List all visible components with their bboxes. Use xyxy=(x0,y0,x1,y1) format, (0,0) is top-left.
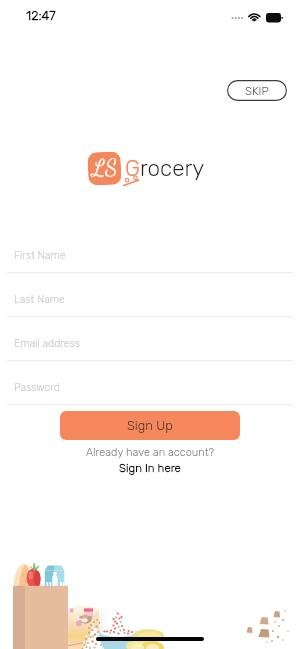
button[interactable]: Sign Up xyxy=(60,411,240,440)
button[interactable]: Sign In here xyxy=(113,460,187,476)
staticText: Already have an account? xyxy=(0,446,300,459)
staticText: 12:47 xyxy=(26,8,56,23)
staticText: Password xyxy=(14,381,60,393)
staticText: G xyxy=(125,155,140,182)
staticText: LS xyxy=(91,153,118,182)
button[interactable]: SKIP xyxy=(227,80,287,101)
staticText: Sign Up xyxy=(127,418,173,433)
staticText: Last Name xyxy=(14,293,65,305)
staticText: rocery xyxy=(140,155,205,182)
staticText: Email address xyxy=(14,337,80,349)
staticText: SKIP xyxy=(245,84,269,98)
staticText: First Name xyxy=(14,249,66,261)
